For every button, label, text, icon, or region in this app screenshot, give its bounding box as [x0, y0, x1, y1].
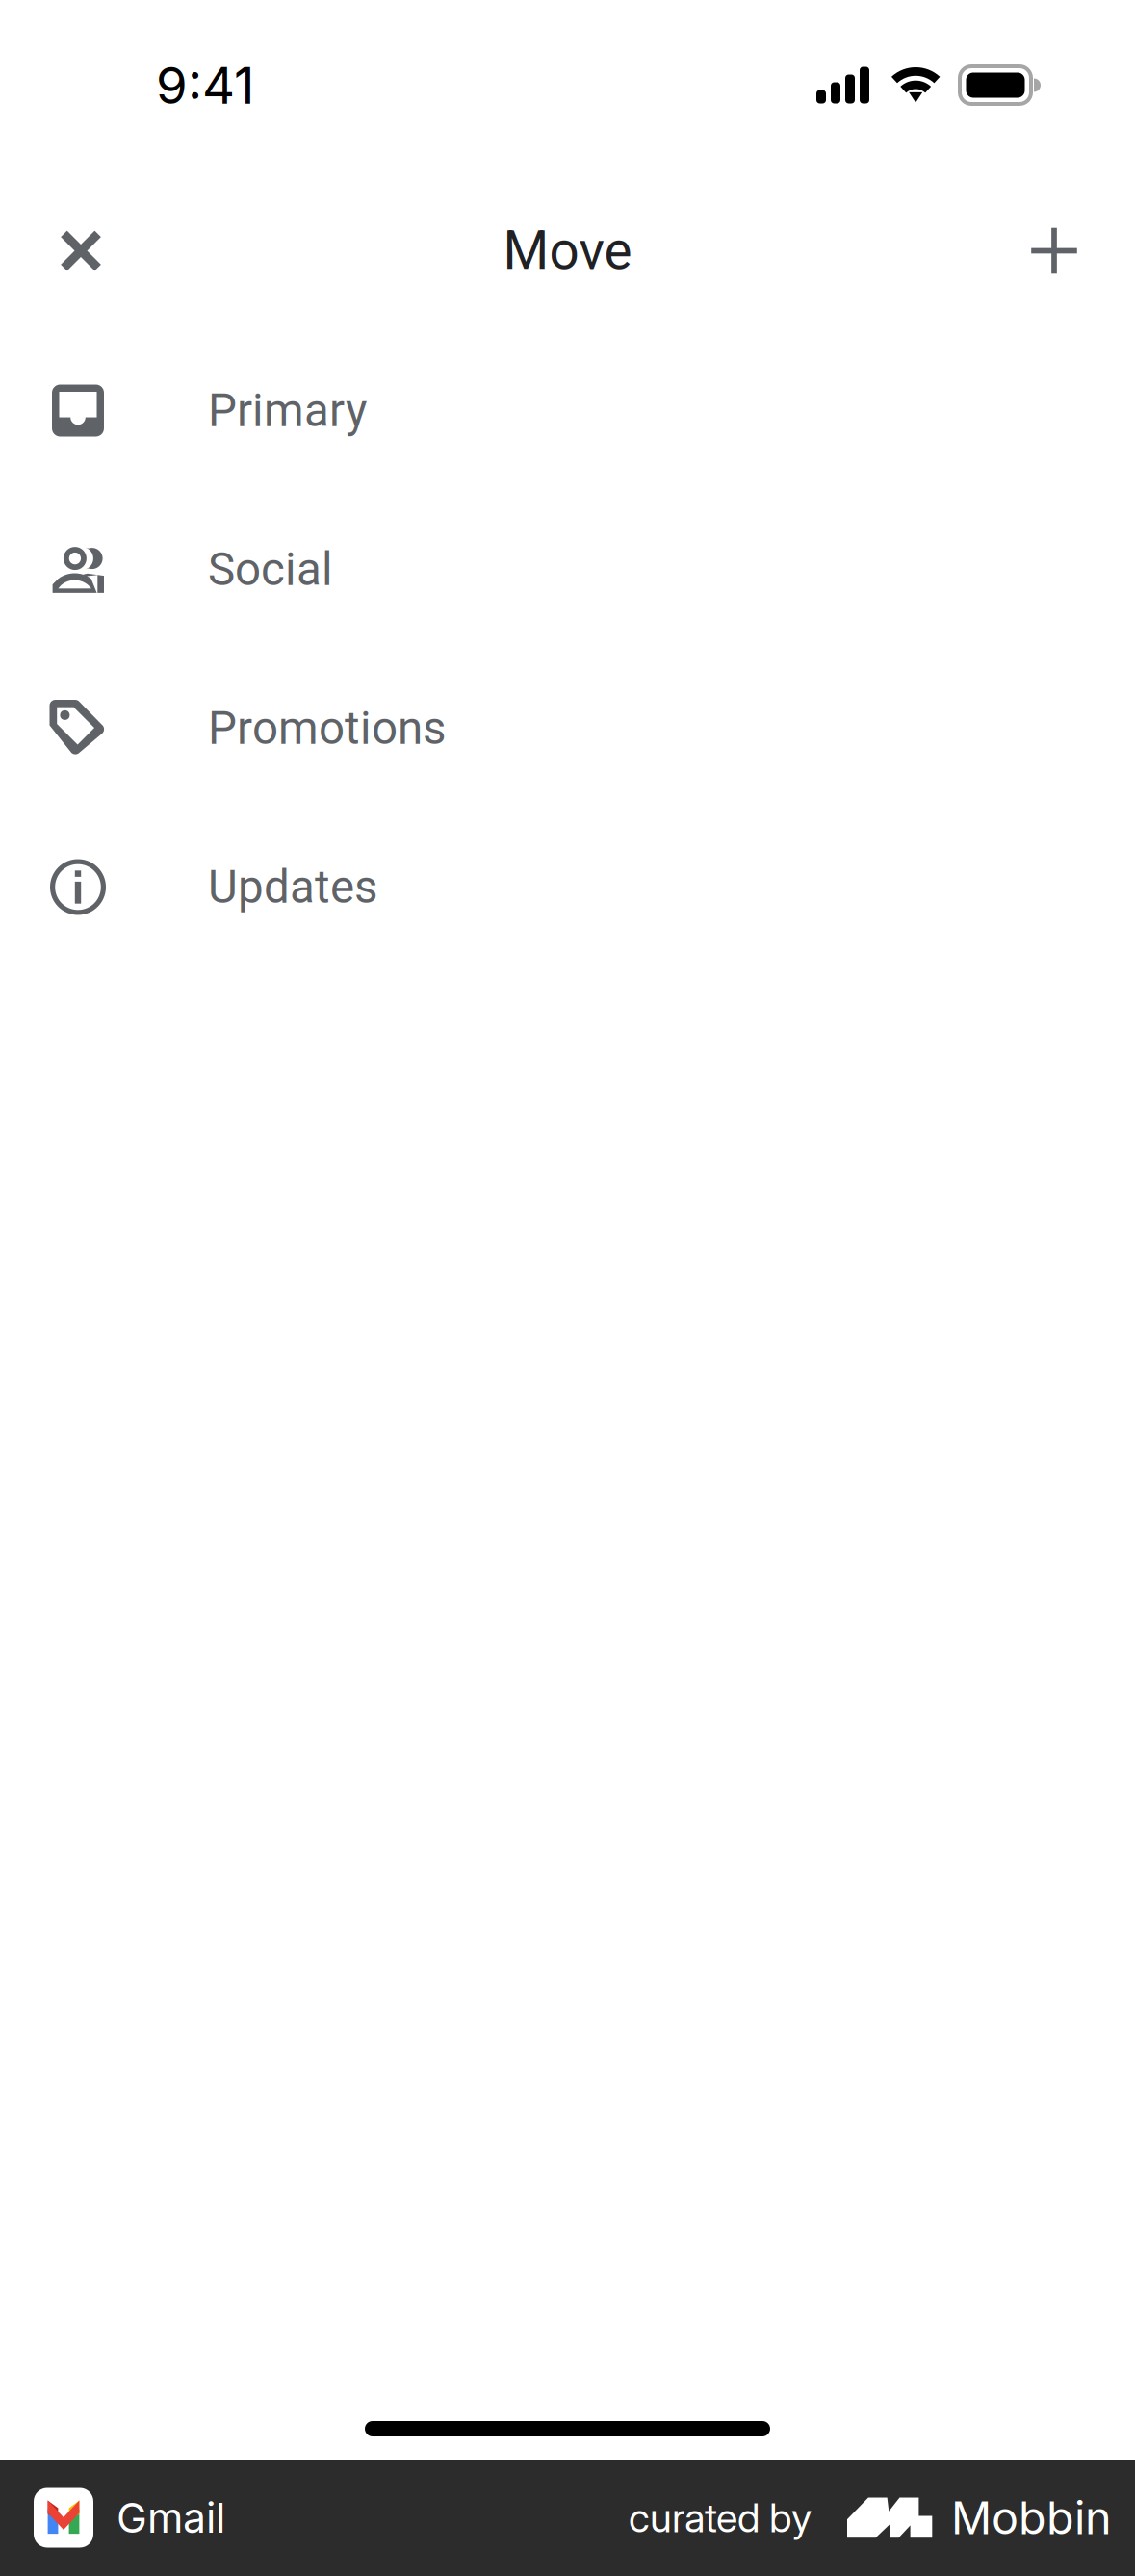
staticText: 9:41 — [156, 54, 254, 116]
staticText: Social — [208, 543, 333, 596]
staticText: Move — [503, 220, 632, 282]
staticText: Mobbin — [951, 2491, 1112, 2545]
button[interactable]: Social — [0, 490, 1135, 649]
staticText: Primary — [208, 384, 367, 437]
button[interactable]: Close — [17, 187, 144, 314]
button[interactable]: Create new label — [991, 187, 1118, 314]
staticText: Updates — [208, 860, 377, 914]
button[interactable]: Updates — [0, 808, 1135, 966]
staticText: curated by — [629, 2494, 812, 2542]
staticText: Gmail — [116, 2493, 225, 2543]
button[interactable]: Promotions — [0, 649, 1135, 808]
staticText: Promotions — [208, 701, 446, 755]
button[interactable]: Primary — [0, 331, 1135, 490]
